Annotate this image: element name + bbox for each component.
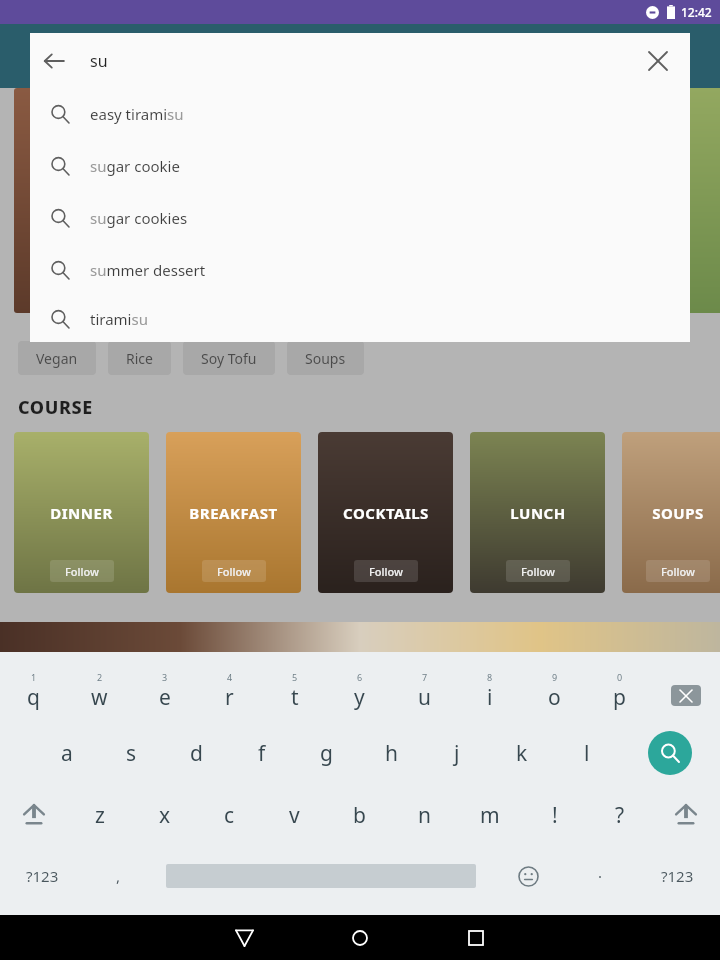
staticText: sugar cookie xyxy=(90,156,180,176)
staticText: , xyxy=(116,866,121,886)
button[interactable]: d xyxy=(164,724,229,782)
button[interactable]: f xyxy=(229,724,294,782)
button[interactable]: · xyxy=(567,848,634,904)
button[interactable]: Emoji xyxy=(489,848,567,904)
staticText: 6 xyxy=(357,671,363,683)
staticText: v xyxy=(289,801,300,830)
staticText: · xyxy=(598,866,603,886)
button[interactable]: Search xyxy=(619,724,720,782)
button[interactable]: 6 xyxy=(327,662,392,720)
button[interactable]: k xyxy=(489,724,554,782)
button[interactable]: Home xyxy=(302,915,418,960)
button[interactable]: Clear query xyxy=(634,37,682,85)
staticText: Follow xyxy=(65,564,99,579)
button[interactable]: DINNER xyxy=(14,432,149,593)
button[interactable]: Back xyxy=(186,915,302,960)
staticText: c xyxy=(224,801,235,830)
button[interactable]: ?123 xyxy=(634,848,720,904)
button[interactable]: Follow xyxy=(202,560,266,582)
button[interactable]: m xyxy=(457,786,522,844)
staticText: 3 xyxy=(162,671,168,683)
button[interactable]: BREAKFAST xyxy=(166,432,301,593)
button[interactable]: Shift xyxy=(652,786,720,844)
staticText: sugar cookies xyxy=(90,208,188,228)
staticText: SOUPS xyxy=(652,503,704,523)
button[interactable]: Soy Tofu xyxy=(183,341,275,375)
button[interactable]: tiramisu xyxy=(30,296,690,342)
button[interactable]: 2 xyxy=(66,662,132,720)
button[interactable]: 0 xyxy=(587,662,652,720)
button[interactable]: ! xyxy=(522,786,587,844)
staticText: g xyxy=(320,739,333,768)
button[interactable]: Shift xyxy=(0,786,67,844)
button[interactable]: SOUPS xyxy=(622,432,720,593)
button[interactable]: Back xyxy=(30,37,78,85)
button[interactable]: 3 xyxy=(132,662,197,720)
button[interactable]: c xyxy=(197,786,262,844)
button[interactable]: n xyxy=(392,786,457,844)
button[interactable]: h xyxy=(359,724,424,782)
button[interactable]: sugar cookie xyxy=(30,140,690,192)
button[interactable]: 8 xyxy=(457,662,522,720)
button[interactable]: b xyxy=(327,786,392,844)
staticText: COCKTAILS xyxy=(343,503,429,523)
button[interactable]: s xyxy=(99,724,164,782)
button[interactable]: Vegan xyxy=(18,341,96,375)
button[interactable]: Rice xyxy=(108,341,171,375)
staticText: 2 xyxy=(97,671,103,683)
button[interactable]: summer dessert xyxy=(30,244,690,296)
staticText: 9 xyxy=(552,671,558,683)
button[interactable]: a xyxy=(34,724,99,782)
button[interactable]: easy tiramisu xyxy=(30,88,690,140)
button[interactable]: Backspace xyxy=(652,662,720,720)
button[interactable]: l xyxy=(554,724,619,782)
button[interactable]: Follow xyxy=(646,560,710,582)
button[interactable]: ? xyxy=(587,786,652,844)
button[interactable]: LUNCH xyxy=(470,432,605,593)
button[interactable]: COCKTAILS xyxy=(318,432,453,593)
button[interactable]: g xyxy=(294,724,359,782)
staticText: ?123 xyxy=(26,866,59,886)
button[interactable]: Soups xyxy=(287,341,364,375)
staticText: k xyxy=(516,739,528,768)
button[interactable]: Follow xyxy=(50,560,114,582)
staticText: b xyxy=(353,801,366,830)
staticText: l xyxy=(584,739,590,768)
button[interactable]: 4 xyxy=(197,662,262,720)
staticText: d xyxy=(190,739,203,768)
staticText: Follow xyxy=(521,564,555,579)
staticText: 12:42 xyxy=(681,4,712,20)
staticText: j xyxy=(454,739,460,768)
staticText: ! xyxy=(552,801,558,830)
button[interactable]: j xyxy=(424,724,489,782)
staticText: z xyxy=(95,801,105,830)
button[interactable]: 9 xyxy=(522,662,587,720)
button[interactable]: 5 xyxy=(262,662,327,720)
staticText: n xyxy=(418,801,431,830)
staticText: a xyxy=(61,739,73,768)
button[interactable]: v xyxy=(262,786,327,844)
staticText: DINNER xyxy=(50,503,113,523)
button[interactable]: Follow xyxy=(354,560,418,582)
staticText: h xyxy=(385,739,398,768)
staticText: f xyxy=(258,739,266,768)
button[interactable] xyxy=(14,88,144,313)
button[interactable] xyxy=(610,88,720,313)
staticText: 0 xyxy=(617,671,623,683)
button[interactable]: ?123 xyxy=(0,848,85,904)
button[interactable]: x xyxy=(132,786,197,844)
staticText: Follow xyxy=(217,564,251,579)
button[interactable]: Follow xyxy=(506,560,570,582)
button[interactable]: Recent apps xyxy=(418,915,534,960)
button[interactable]: Space xyxy=(152,848,489,904)
button[interactable]: sugar cookies xyxy=(30,192,690,244)
staticText: easy tiramisu xyxy=(90,104,184,124)
button[interactable]: z xyxy=(67,786,132,844)
staticText: 7 xyxy=(422,671,428,683)
staticText: o xyxy=(548,683,561,712)
staticText: su xyxy=(90,50,108,72)
button[interactable]: , xyxy=(85,848,152,904)
button[interactable]: 1 xyxy=(0,662,66,720)
staticText: y xyxy=(354,683,365,712)
button[interactable]: 7 xyxy=(392,662,457,720)
